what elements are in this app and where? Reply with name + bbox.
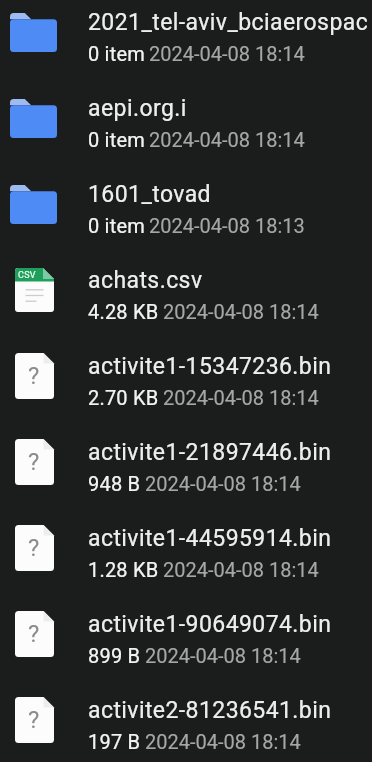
button[interactable]: CSV file (0, 258, 372, 344)
staticText: 2024-04-08 18:14 (163, 386, 319, 409)
other: Folder (10, 99, 57, 138)
staticText: ? (28, 534, 40, 562)
button[interactable]: Unknown file type (0, 430, 372, 516)
other: Unknown file type (15, 697, 54, 743)
button[interactable]: Folder (0, 86, 372, 172)
button[interactable]: Folder (0, 0, 372, 86)
staticText: achats.csv (88, 267, 203, 294)
other: Folder (10, 13, 57, 52)
other: Unknown file type (15, 611, 54, 657)
staticText: 2024-04-08 18:14 (145, 730, 301, 753)
staticText: activite1-15347236.bin (88, 353, 332, 380)
staticText: 1.28 KB (88, 558, 159, 581)
staticText: aepi.org.i (88, 95, 187, 122)
staticText: 2024-04-08 18:13 (149, 214, 305, 237)
staticText: 899 B (88, 644, 141, 667)
staticText: 0 item (88, 214, 145, 237)
button[interactable]: Unknown file type (0, 602, 372, 688)
staticText: 1601_tovad (88, 181, 211, 208)
staticText: 2024-04-08 18:14 (163, 300, 319, 323)
staticText: 2024-04-08 18:14 (163, 558, 319, 581)
staticText: activite1-90649074.bin (88, 611, 332, 638)
staticText: activite2-81236541.bin (88, 697, 332, 724)
staticText: CSV (18, 270, 36, 281)
staticText: 4.28 KB (88, 300, 159, 323)
staticText: 0 item (88, 128, 145, 151)
staticText: activite1-21897446.bin (88, 439, 332, 466)
staticText: 2024-04-08 18:14 (149, 42, 305, 65)
staticText: 2024-04-08 18:14 (149, 128, 305, 151)
staticText: ? (28, 448, 40, 476)
other: Unknown file type (15, 525, 54, 571)
other: CSV file (15, 268, 54, 312)
staticText: 2024-04-08 18:14 (145, 472, 301, 495)
other: Unknown file type (15, 439, 54, 485)
staticText: 0 item (88, 42, 145, 65)
staticText: ? (28, 706, 40, 734)
staticText: 197 B (88, 730, 141, 753)
button[interactable]: Unknown file type (0, 344, 372, 430)
other: Folder (10, 185, 57, 224)
button[interactable]: Folder (0, 172, 372, 258)
button[interactable]: Unknown file type (0, 516, 372, 602)
staticText: 2.70 KB (88, 386, 159, 409)
button[interactable]: Unknown file type (0, 688, 372, 762)
staticText: activite1-44595914.bin (88, 525, 332, 552)
staticText: ? (28, 362, 40, 390)
staticText: 948 B (88, 472, 141, 495)
staticText: 2024-04-08 18:14 (145, 644, 301, 667)
staticText: 2021_tel-aviv_bciaerospac (88, 9, 369, 36)
other: Unknown file type (15, 353, 54, 399)
staticText: ? (28, 620, 40, 648)
